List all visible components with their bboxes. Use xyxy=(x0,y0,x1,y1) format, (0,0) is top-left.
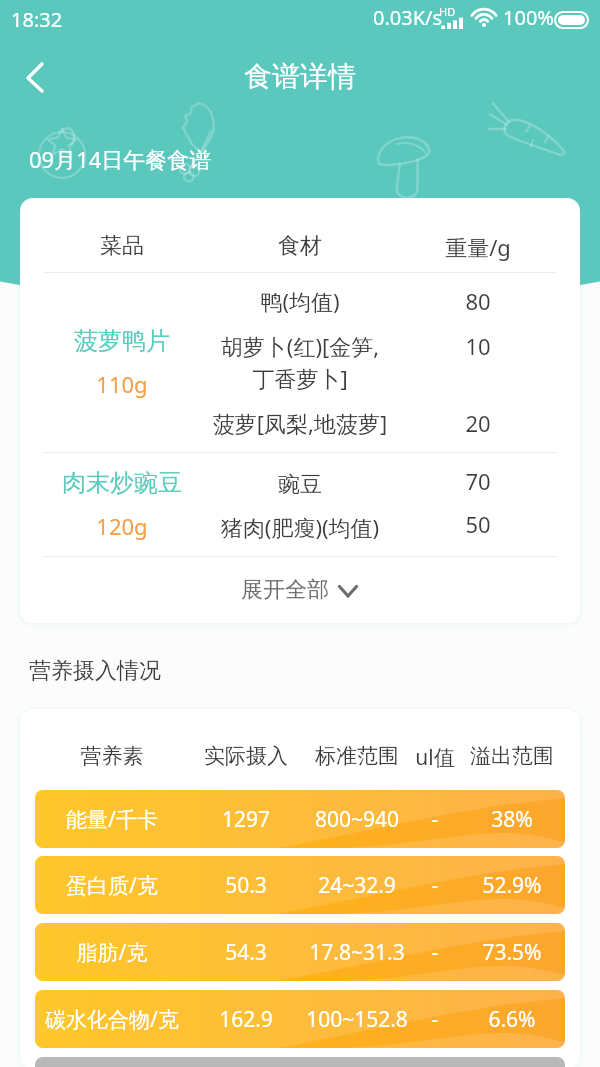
button[interactable]: 蛋白质/克 xyxy=(35,856,565,914)
staticText: 09月14日午餐食谱 xyxy=(29,144,212,174)
staticText: HD xyxy=(439,4,456,19)
staticText: 脂肪/克 xyxy=(35,938,189,967)
staticText: 17.8~31.3 xyxy=(303,938,411,967)
staticText: 162.9 xyxy=(189,1005,303,1034)
staticText: 菠萝鸭片 xyxy=(43,326,201,356)
staticText: 营养摄入情况 xyxy=(29,657,161,685)
staticText: 展开全部 xyxy=(241,576,329,604)
staticText: 18:32 xyxy=(11,6,63,33)
button[interactable]: 能量/千卡 xyxy=(35,790,565,848)
staticText: 100~152.8 xyxy=(303,1005,411,1034)
staticText: 丁香萝卜] xyxy=(201,363,399,393)
staticText: 100% xyxy=(503,4,554,31)
staticText: 20 xyxy=(399,408,557,438)
staticText: 73.5% xyxy=(459,938,565,967)
staticText: 70 xyxy=(399,466,557,496)
staticText: 38% xyxy=(459,805,565,834)
staticText: - xyxy=(411,805,459,834)
staticText: 0.03K/s xyxy=(373,4,443,31)
staticText: 胡萝卜(红)[金笋, xyxy=(201,331,399,361)
staticText: 80 xyxy=(399,286,557,316)
staticText: 50 xyxy=(399,509,557,539)
staticText: 碳水化合物/克 xyxy=(35,1005,189,1034)
staticText: 溢出范围 xyxy=(459,743,565,769)
staticText: - xyxy=(411,871,459,900)
staticText: 6.6% xyxy=(459,1005,565,1034)
staticText: 营养素 xyxy=(35,743,189,769)
staticText: 蛋白质/克 xyxy=(35,871,189,900)
staticText: 50.3 xyxy=(189,871,303,900)
staticText: 800~940 xyxy=(303,805,411,834)
staticText: ul值 xyxy=(411,743,459,772)
staticText: - xyxy=(411,938,459,967)
button[interactable]: 展开全部 xyxy=(20,557,580,623)
staticText: 豌豆 xyxy=(201,471,399,499)
staticText: 菜品 xyxy=(43,232,201,260)
staticText: 肉末炒豌豆 xyxy=(43,468,201,498)
button[interactable]: Back xyxy=(3,51,57,105)
staticText: 52.9% xyxy=(459,871,565,900)
staticText: 能量/千卡 xyxy=(35,805,189,834)
staticText: - xyxy=(411,1005,459,1034)
button[interactable]: 碳水化合物/克 xyxy=(35,990,565,1048)
staticText: 120g xyxy=(43,511,201,541)
staticText: 54.3 xyxy=(189,938,303,967)
staticText: 24~32.9 xyxy=(303,871,411,900)
staticText: 食材 xyxy=(201,232,399,260)
button[interactable]: 脂肪/克 xyxy=(35,923,565,981)
staticText: 猪肉(肥瘦)(均值) xyxy=(201,512,399,542)
staticText: 10 xyxy=(399,331,557,361)
staticText: 菠萝[凤梨,地菠萝] xyxy=(201,408,399,438)
staticText: 实际摄入 xyxy=(189,743,303,769)
staticText: 食谱详情 xyxy=(0,59,600,94)
staticText: 110g xyxy=(43,369,201,399)
staticText: 重量/g xyxy=(399,232,557,262)
staticText: 1297 xyxy=(189,805,303,834)
staticText: 标准范围 xyxy=(303,743,411,769)
staticText: 鸭(均值) xyxy=(201,286,399,316)
